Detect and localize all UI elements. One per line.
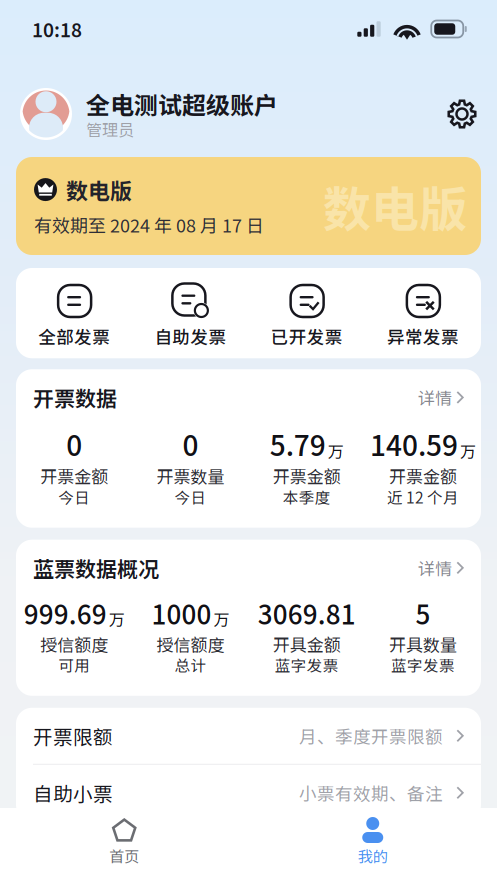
button[interactable]: 开票限额	[16, 708, 481, 764]
staticText: 蓝字发票	[275, 656, 339, 674]
button[interactable]: 全部发票	[16, 283, 132, 346]
staticText: 999.69	[24, 598, 107, 628]
staticText: 万	[460, 441, 476, 460]
staticText: 140.59	[370, 428, 458, 460]
staticText: 10:18	[32, 18, 82, 40]
staticText: 0	[182, 428, 198, 460]
staticText: 开票数据	[33, 385, 117, 410]
staticText: 开票数量	[156, 466, 224, 486]
staticText: 5.79	[270, 428, 326, 460]
staticText: 开具金额	[273, 634, 341, 654]
button[interactable]: 我的	[248, 817, 497, 864]
staticText: 授信额度	[156, 634, 224, 654]
staticText: 小票有效期、备注	[299, 783, 443, 803]
staticText: 万	[213, 610, 229, 628]
button[interactable]: 详情	[418, 388, 464, 407]
staticText: 数电版	[66, 177, 132, 202]
staticText: 5	[415, 598, 430, 628]
staticText: 1000	[151, 598, 211, 628]
staticText: 开具数量	[389, 634, 457, 654]
staticText: 详情	[418, 388, 452, 407]
staticText: 近 12 个月	[387, 488, 459, 506]
button[interactable]: 异常发票	[365, 283, 481, 346]
staticText: 有效期至 2024 年 08 月 17 日	[34, 214, 264, 235]
button[interactable]: 详情	[418, 558, 464, 578]
staticText: 全电测试超级账户	[86, 90, 278, 118]
staticText: 总计	[174, 656, 206, 674]
staticText: 数电版	[323, 178, 467, 234]
staticText: 管理员	[86, 120, 134, 138]
staticText: 开票金额	[273, 466, 341, 486]
staticText: 异常发票	[387, 326, 459, 346]
staticText: 蓝票数据概况	[33, 556, 159, 580]
staticText: 已开发票	[271, 326, 343, 346]
staticText: 月、季度开票限额	[299, 726, 443, 746]
staticText: 今日	[58, 488, 90, 506]
staticText: 开票限额	[33, 724, 113, 747]
staticText: 开票金额	[40, 466, 108, 486]
staticText: 我的	[358, 847, 388, 864]
button[interactable]: 自助小票	[16, 765, 481, 821]
staticText: 今日	[174, 488, 206, 506]
staticText: 万	[109, 610, 125, 628]
staticText: 首页	[109, 847, 139, 864]
staticText: 全部发票	[38, 326, 110, 346]
staticText: 详情	[418, 558, 452, 578]
staticText: 可用	[58, 656, 90, 674]
staticText: 自助发票	[154, 326, 226, 346]
staticText: 开票金额	[389, 466, 457, 486]
button[interactable]: 首页	[0, 817, 248, 864]
staticText: 3069.81	[258, 598, 356, 628]
staticText: 万	[328, 441, 344, 460]
button[interactable]: 自助发票	[132, 283, 248, 346]
staticText: 自助小票	[33, 781, 113, 804]
staticText: 0	[66, 428, 82, 460]
staticText: 蓝字发票	[391, 656, 455, 674]
staticText: 授信额度	[40, 634, 108, 654]
button[interactable]: 已开发票	[248, 283, 365, 346]
button[interactable]: 设置	[447, 99, 477, 129]
staticText: 本季度	[283, 488, 331, 506]
